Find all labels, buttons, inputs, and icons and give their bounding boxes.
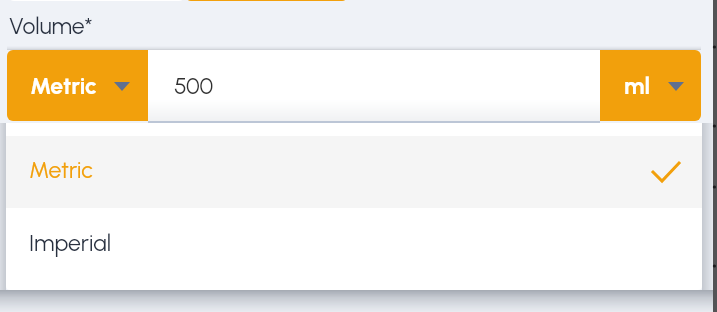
staticText: ml	[624, 72, 651, 100]
button[interactable]: ml	[600, 50, 701, 121]
button[interactable]: 500	[148, 50, 600, 121]
staticText: Metric	[29, 156, 93, 184]
staticText: 500	[174, 72, 214, 100]
button[interactable]: Scrollbar	[713, 0, 717, 312]
button[interactable]: Metric	[6, 136, 702, 208]
staticText: Volume*	[9, 12, 93, 40]
staticText: Imperial	[29, 229, 112, 257]
staticText: Metric	[30, 72, 97, 100]
button[interactable]: Metric	[7, 50, 148, 121]
button[interactable]: Imperial	[6, 208, 702, 280]
